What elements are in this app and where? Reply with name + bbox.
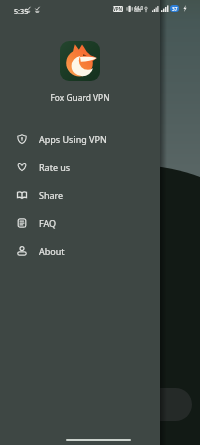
staticText: 44.0	[134, 5, 144, 11]
staticText: 37	[172, 6, 178, 12]
staticText: Rate us	[39, 161, 71, 173]
staticText: Share	[39, 189, 64, 201]
button[interactable]: Rate us	[0, 153, 160, 181]
button[interactable]: FAQ	[0, 209, 160, 237]
staticText: Fox Guard VPN	[0, 92, 160, 103]
staticText: VPN	[113, 6, 123, 12]
staticText: About	[39, 245, 65, 257]
button[interactable]: Share	[0, 181, 160, 209]
staticText: 5:35	[14, 6, 29, 16]
staticText: FAQ	[39, 217, 57, 229]
staticText: KB/S	[134, 9, 141, 13]
button[interactable]: Apps Using VPN	[0, 125, 160, 153]
button[interactable]: About	[0, 237, 160, 265]
staticText: Apps Using VPN	[39, 133, 107, 145]
